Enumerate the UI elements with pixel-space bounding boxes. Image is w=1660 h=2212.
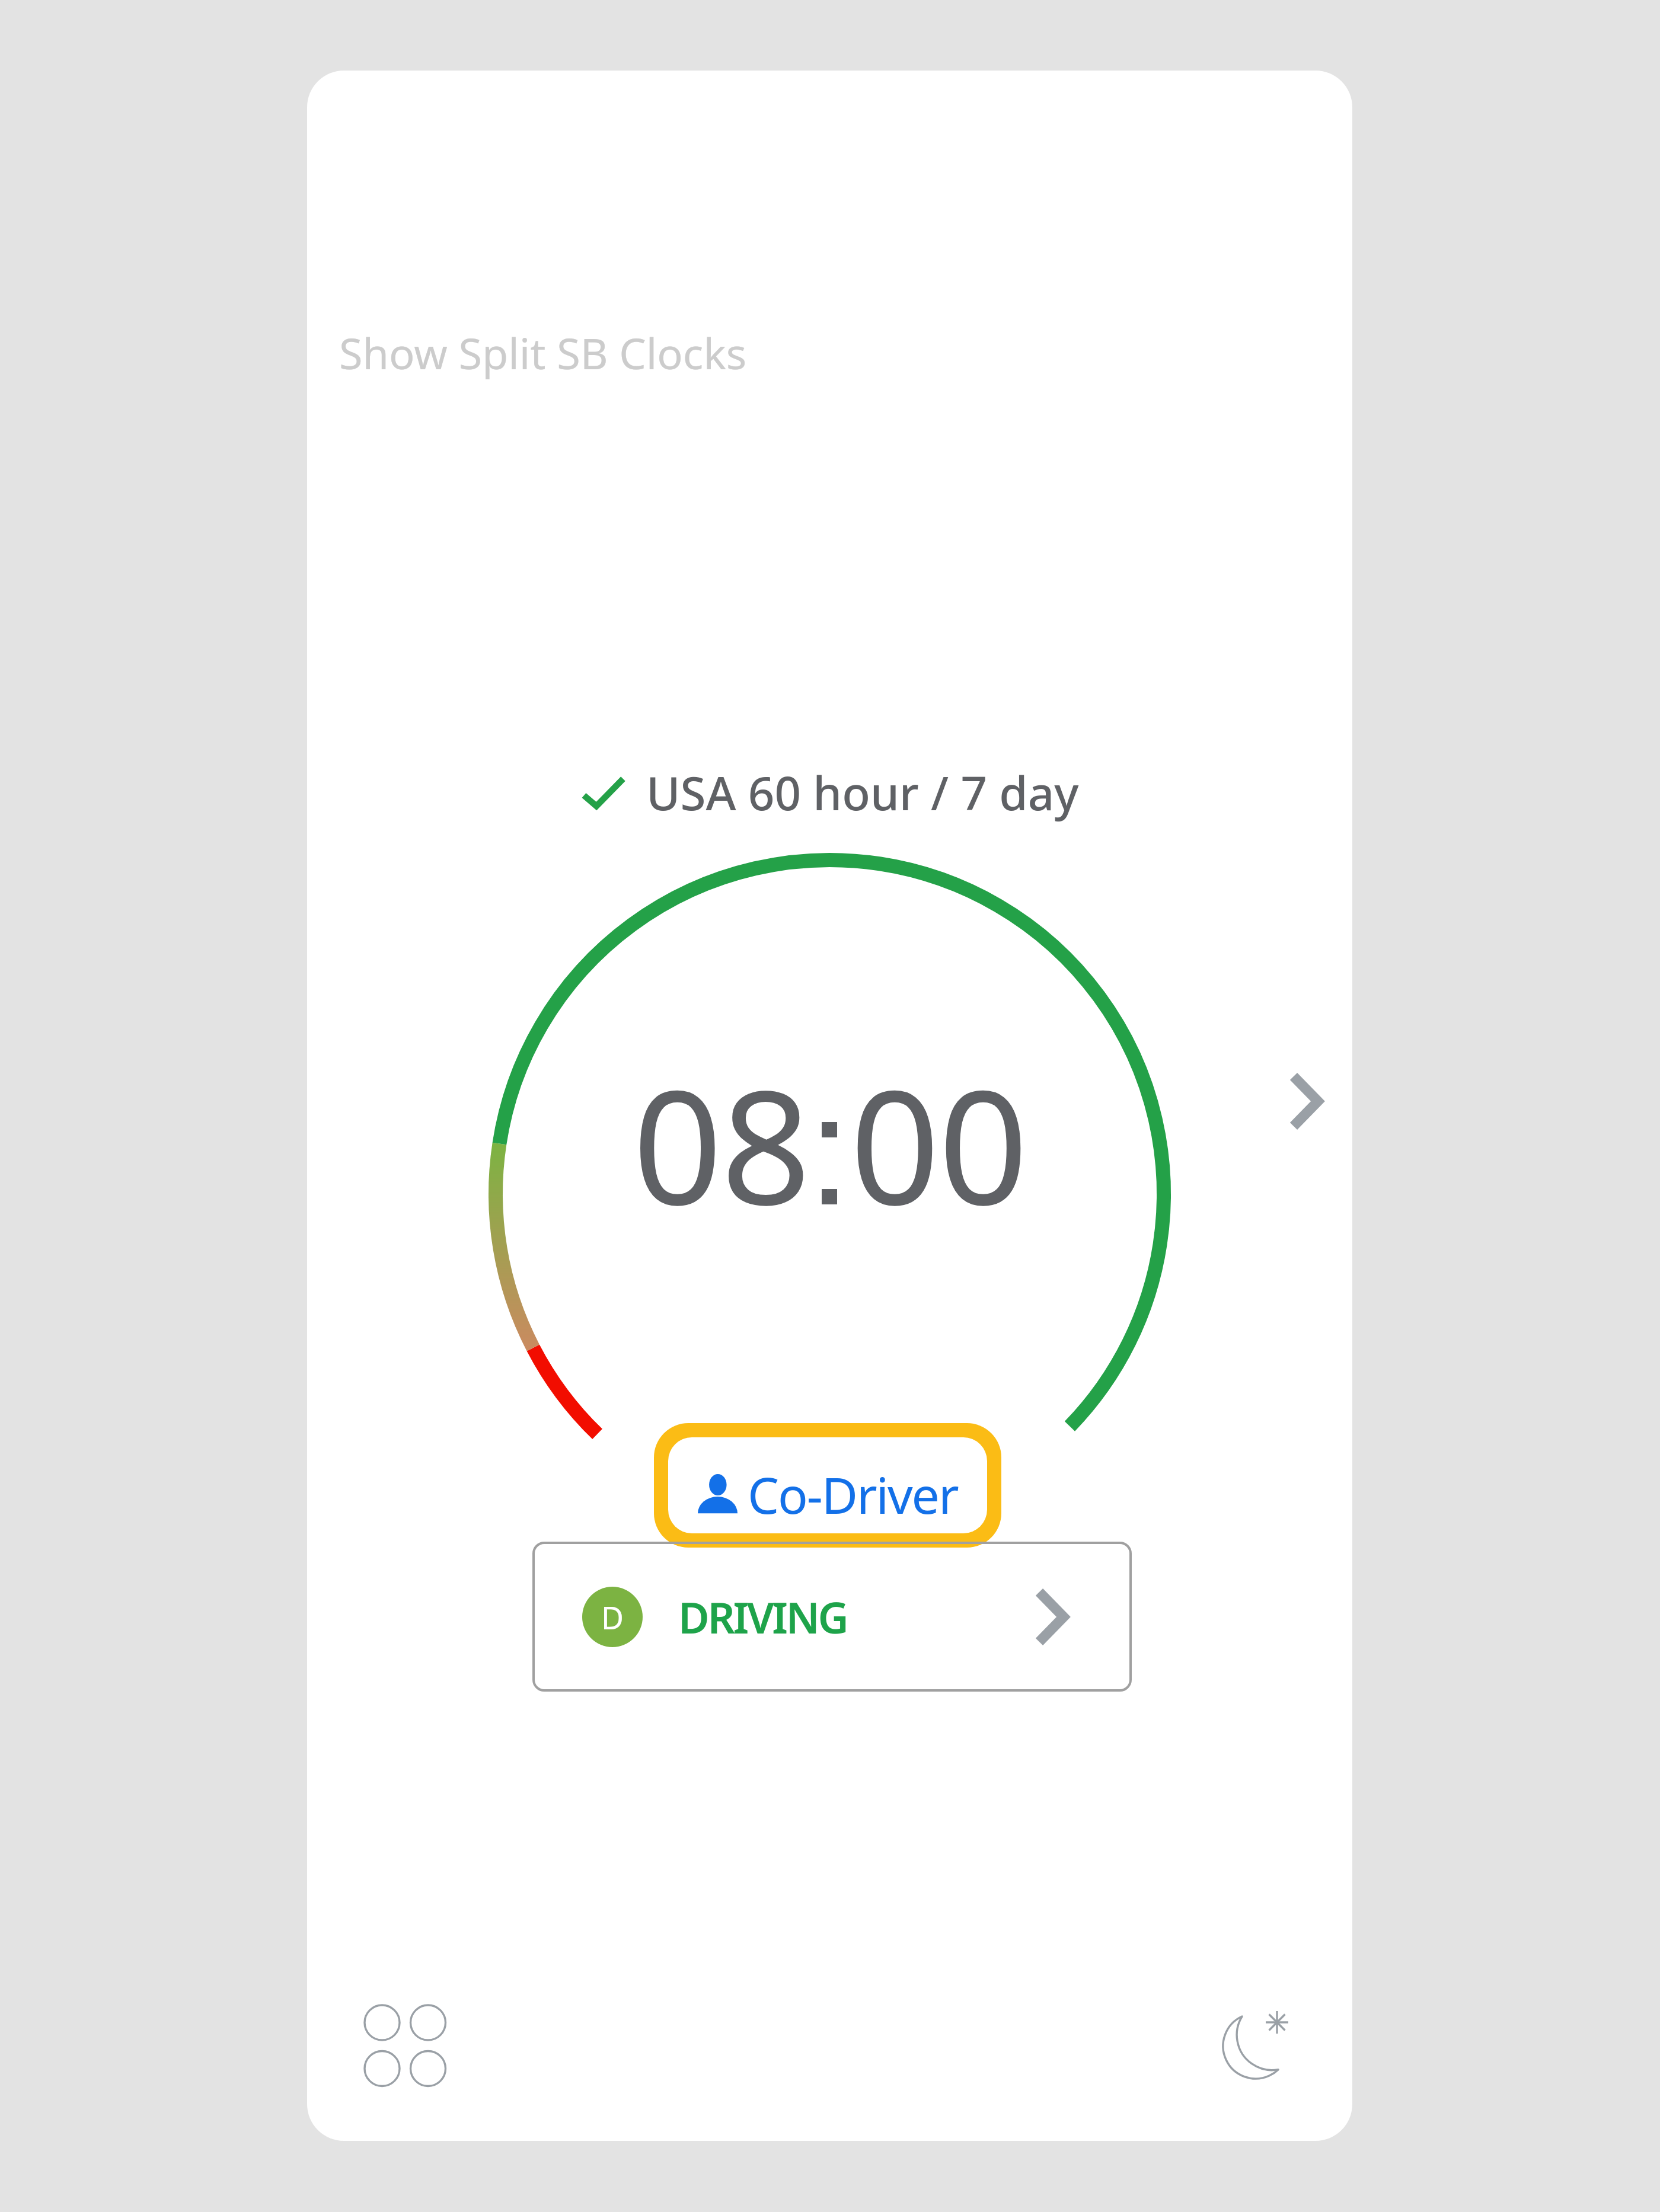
button[interactable]: D — [532, 1542, 1132, 1692]
button[interactable]: Co-Driver — [668, 1437, 987, 1533]
staticText: Show Split SB Clocks — [339, 324, 747, 382]
button[interactable]: Apps — [340, 1980, 470, 2111]
staticText: DRIVING — [678, 1588, 847, 1646]
button[interactable]: Next clock — [1254, 1050, 1352, 1152]
staticText: Co-Driver — [748, 1460, 958, 1528]
staticText: 08:00 — [633, 1037, 1027, 1251]
staticText: USA 60 hour / 7 day — [646, 761, 1079, 824]
staticText: D — [601, 1596, 624, 1638]
button[interactable]: Show Split SB Clocks — [324, 303, 774, 392]
button[interactable]: Night mode — [1190, 1981, 1321, 2111]
